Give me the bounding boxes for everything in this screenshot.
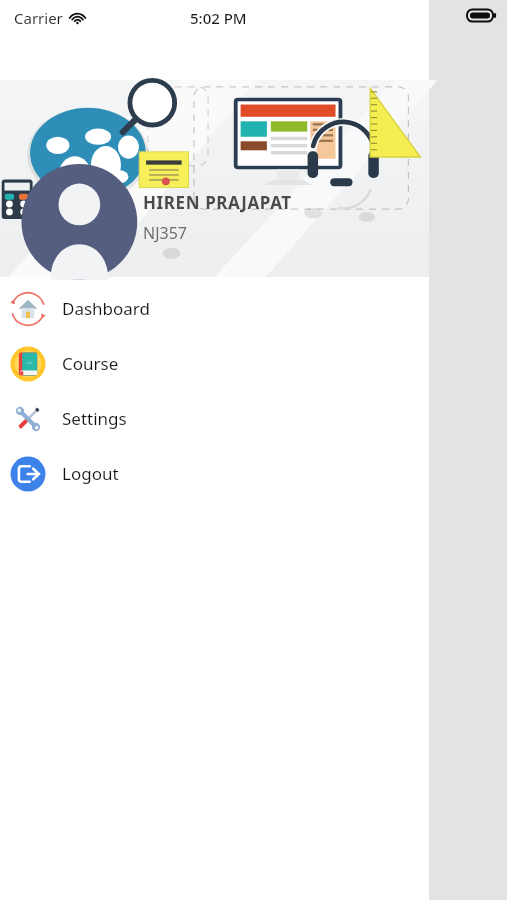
staticText: Course	[62, 352, 119, 375]
button[interactable]: Logout	[0, 446, 429, 501]
staticText: Dashboard	[62, 297, 151, 320]
button[interactable]: Dashboard	[0, 281, 429, 336]
other: Dashboard	[9, 290, 47, 328]
staticText: HIREN PRAJAPAT	[143, 191, 292, 214]
staticText: Logout	[62, 462, 119, 485]
other: Settings	[9, 400, 47, 438]
other: Logout	[9, 455, 47, 493]
staticText: Carrier	[14, 8, 63, 28]
staticText: NJ357	[143, 222, 187, 244]
button[interactable]: Course	[0, 336, 429, 391]
staticText: Settings	[62, 407, 127, 430]
button[interactable]: Settings	[0, 391, 429, 446]
staticText: 5:02 PM	[190, 8, 247, 28]
other: Course	[9, 345, 47, 383]
